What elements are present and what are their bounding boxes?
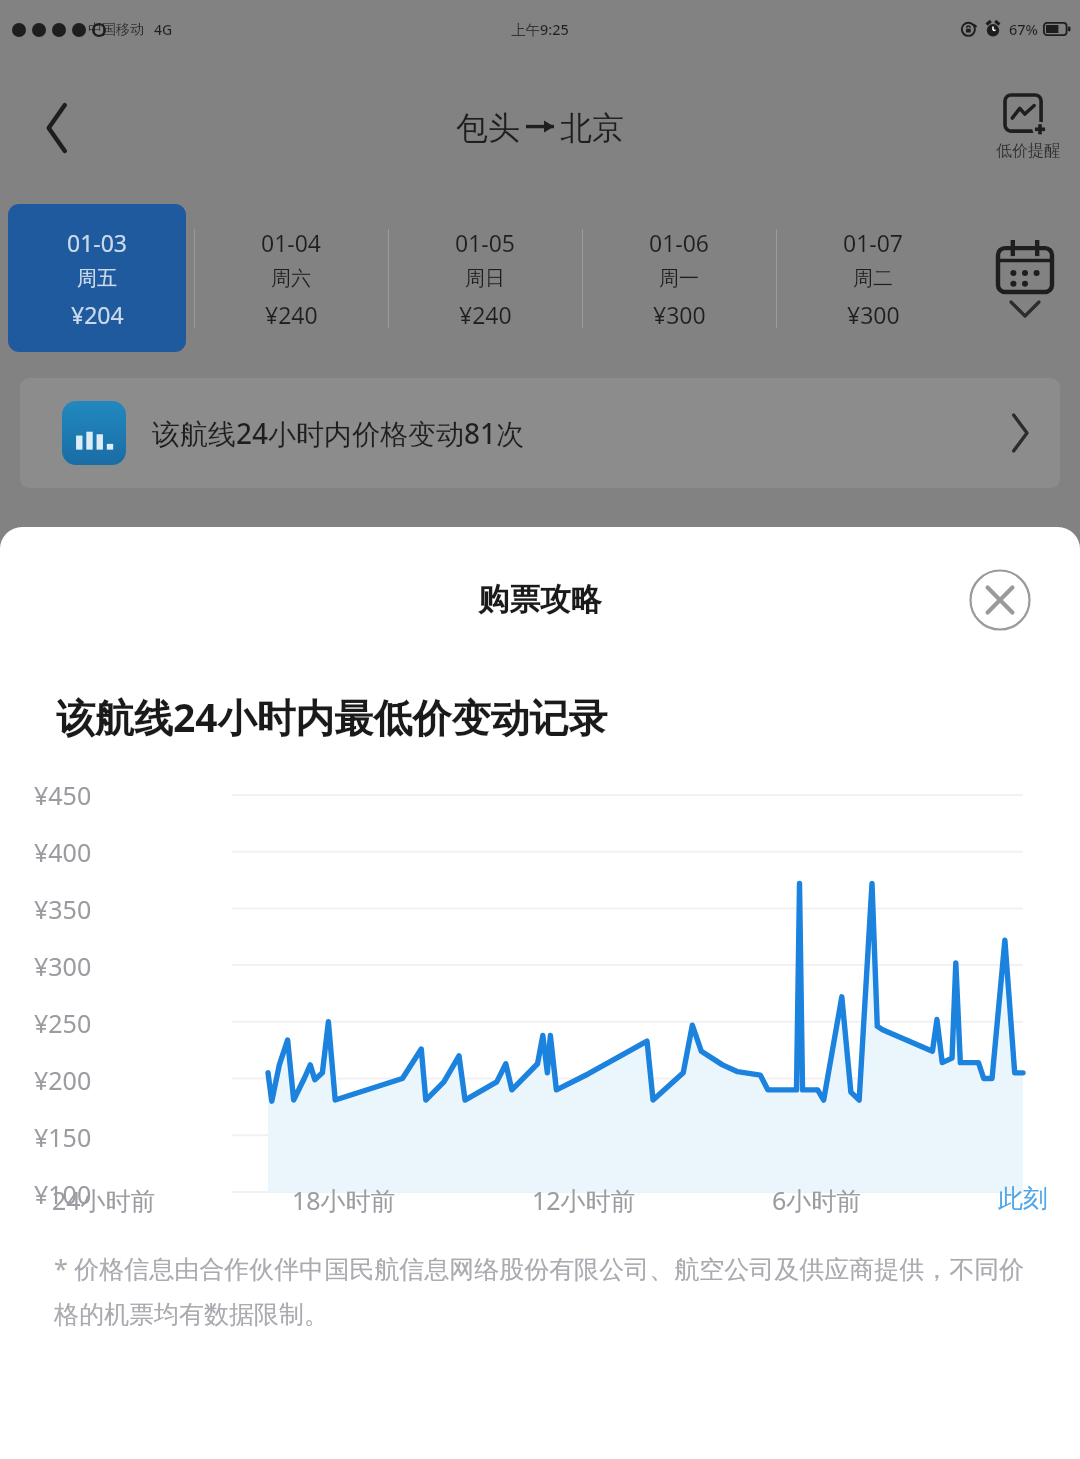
staticText: 01-04 (261, 227, 322, 258)
staticText: 该航线24小时内价格变动81次 (152, 414, 525, 452)
staticText: ¥450 (34, 778, 92, 812)
staticText: 01-06 (649, 227, 710, 258)
button[interactable]: 低价提醒 (996, 95, 1060, 161)
staticText: 包头 (456, 108, 520, 148)
staticText: * 价格信息由合作伙伴中国民航信息网络股份有限公司、航空公司及供应商提供，不同价… (54, 1251, 1026, 1331)
staticText: 周五 (77, 266, 117, 291)
staticText: 12小时前 (532, 1183, 636, 1217)
staticText: 4G (154, 20, 173, 39)
staticText: ¥300 (653, 299, 706, 330)
staticText: ¥100 (34, 1177, 92, 1206)
staticText: 01-03 (67, 227, 128, 258)
staticText: ¥300 (847, 299, 900, 330)
staticText: 67% (1009, 19, 1038, 39)
staticText: 周二 (853, 266, 893, 291)
staticText: 上午9:25 (511, 19, 569, 39)
staticText: 周六 (271, 266, 311, 291)
staticText: 该航线24小时内最低价变动记录 (56, 690, 608, 743)
staticText: 此刻 (998, 1183, 1048, 1214)
button[interactable]: 该航线24小时内价格变动81次 (20, 378, 1060, 488)
staticText: 6小时前 (772, 1183, 862, 1217)
staticText: ¥150 (34, 1120, 92, 1154)
staticText: 购票攻略 (478, 580, 602, 619)
staticText: 周日 (465, 266, 505, 291)
button[interactable]: Back (22, 93, 92, 163)
button[interactable]: 01-07 (776, 198, 970, 358)
staticText: 中国移动 (88, 21, 144, 39)
button[interactable]: Choose date (970, 198, 1080, 358)
staticText: ¥400 (34, 835, 92, 869)
staticText: 24小时前 (52, 1183, 156, 1217)
staticText: ¥240 (265, 299, 318, 330)
staticText: ¥240 (459, 299, 512, 330)
staticText: 01-07 (843, 227, 904, 258)
staticText: ¥204 (71, 299, 124, 330)
staticText: 低价提醒 (996, 141, 1060, 161)
button[interactable]: 01-04 (194, 198, 388, 358)
staticText: ¥350 (34, 892, 92, 926)
button[interactable]: 01-03 (8, 204, 186, 352)
staticText: ¥250 (34, 1006, 92, 1040)
button[interactable]: Close (968, 568, 1032, 632)
staticText: ¥300 (34, 949, 92, 983)
button[interactable]: 01-06 (582, 198, 776, 358)
staticText: ¥200 (34, 1063, 92, 1097)
staticText: 01-05 (455, 227, 516, 258)
button[interactable]: 01-05 (388, 198, 582, 358)
staticText: 周一 (659, 266, 699, 291)
staticText: 北京 (560, 108, 624, 148)
staticText: 18小时前 (292, 1183, 396, 1217)
